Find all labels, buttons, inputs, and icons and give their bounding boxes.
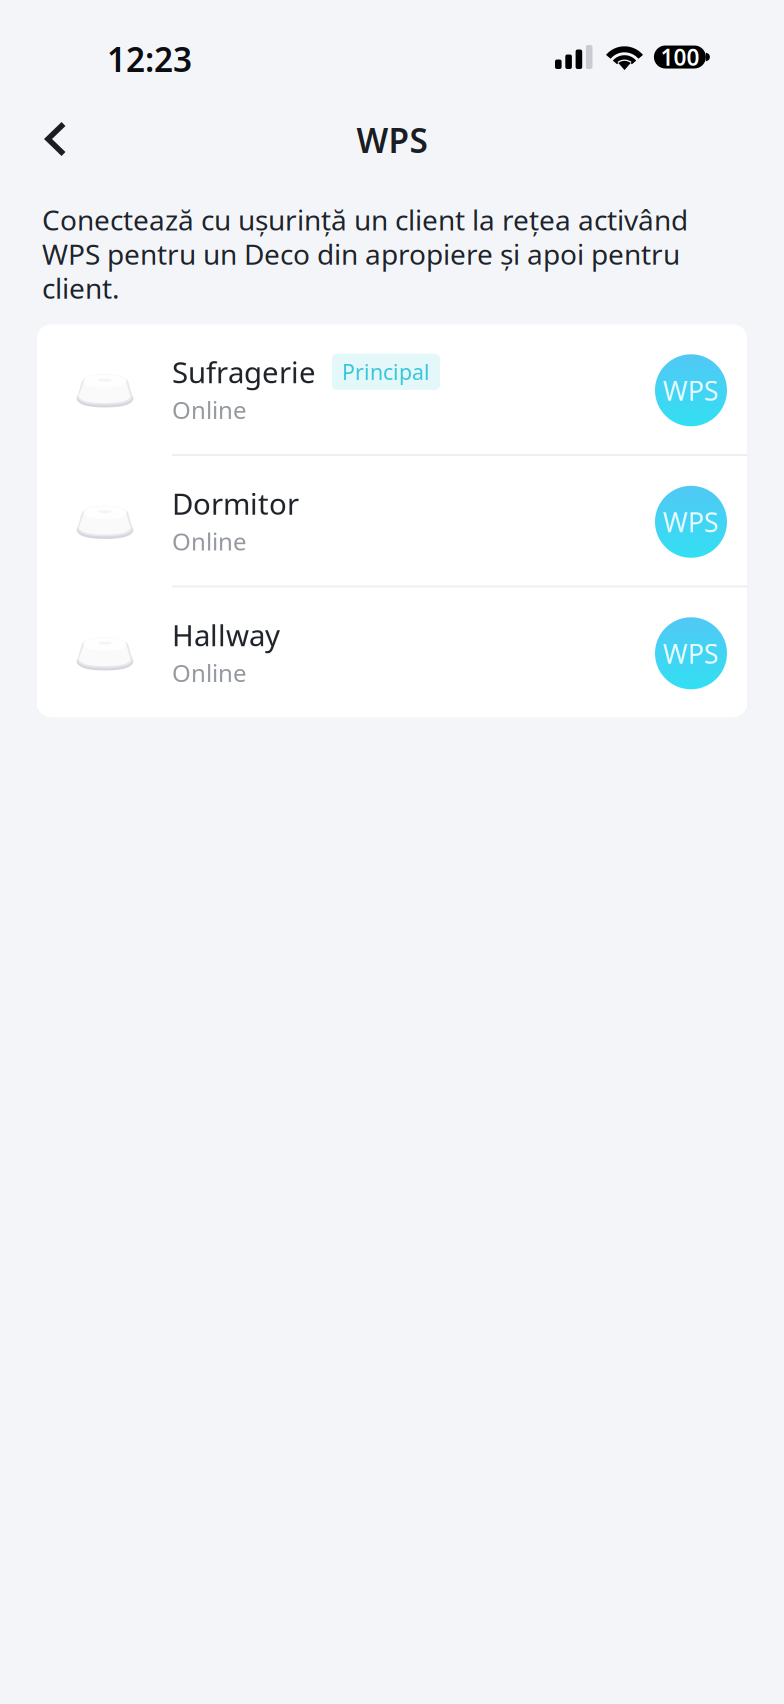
staticText: WPS [356,118,427,162]
button[interactable]: Hallway [37,587,747,717]
staticText: 100 [660,42,699,72]
staticText: WPS [663,373,719,408]
button[interactable]: Back [11,104,101,174]
staticText: 12:23 [107,37,192,81]
button[interactable]: WPS [655,617,727,689]
staticText: Sufragerie [172,352,316,391]
button[interactable]: Sufragerie [37,324,747,454]
staticText: WPS [663,636,719,671]
button[interactable]: Dormitor [37,456,747,585]
staticText: Online [172,657,247,689]
button[interactable]: WPS [655,354,727,426]
staticText: Dormitor [172,484,299,523]
staticText: Online [172,525,247,557]
staticText: WPS [663,504,719,539]
staticText: Online [172,394,247,426]
staticText: Conectează cu ușurință un client la rețe… [42,201,688,306]
staticText: Hallway [172,615,280,654]
staticText: Principal [342,358,430,386]
button[interactable]: WPS [655,486,727,558]
